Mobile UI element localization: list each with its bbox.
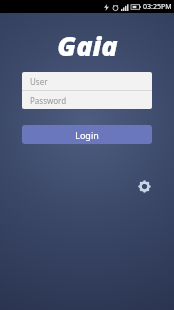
button[interactable]: Login bbox=[22, 125, 152, 144]
staticText: Gaia bbox=[57, 27, 118, 59]
button[interactable]: User bbox=[22, 72, 152, 90]
staticText: 03:25PM bbox=[143, 2, 172, 12]
staticText: Password bbox=[30, 95, 67, 106]
staticText: User bbox=[30, 76, 48, 87]
button[interactable]: Password bbox=[22, 91, 152, 109]
staticText: Login bbox=[75, 129, 99, 141]
button[interactable]: Settings bbox=[134, 176, 154, 196]
